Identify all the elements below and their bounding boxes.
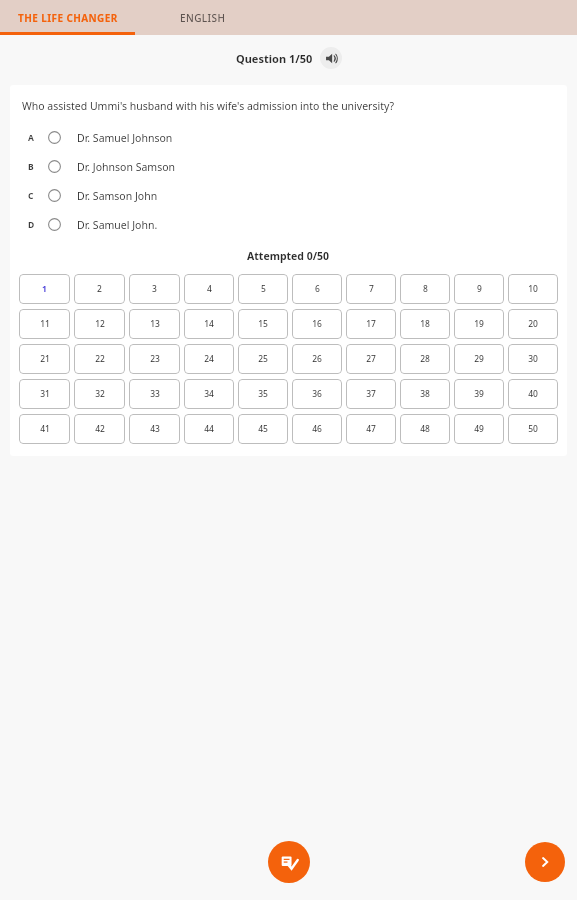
staticText: 6 bbox=[315, 283, 320, 295]
staticText: ENGLISH bbox=[180, 11, 226, 25]
button[interactable]: 40 bbox=[508, 379, 558, 409]
button[interactable]: 15 bbox=[238, 309, 288, 339]
button[interactable]: 31 bbox=[19, 379, 70, 409]
staticText: 16 bbox=[312, 318, 322, 330]
button[interactable]: 22 bbox=[74, 344, 125, 374]
button[interactable]: 18 bbox=[400, 309, 450, 339]
button[interactable]: A bbox=[10, 123, 567, 152]
staticText: 42 bbox=[95, 423, 105, 435]
staticText: 3 bbox=[152, 283, 157, 295]
button[interactable]: 43 bbox=[129, 414, 180, 444]
button[interactable]: 21 bbox=[19, 344, 70, 374]
staticText: 23 bbox=[150, 353, 160, 365]
button[interactable]: 8 bbox=[400, 274, 450, 304]
staticText: 43 bbox=[150, 423, 160, 435]
staticText: 28 bbox=[420, 353, 430, 365]
staticText: 26 bbox=[312, 353, 322, 365]
staticText: 19 bbox=[474, 318, 484, 330]
staticText: Who assisted Ummi's husband with his wif… bbox=[22, 99, 395, 113]
button[interactable]: 12 bbox=[74, 309, 125, 339]
button[interactable]: 49 bbox=[454, 414, 504, 444]
staticText: 14 bbox=[204, 318, 214, 330]
button[interactable]: 42 bbox=[74, 414, 125, 444]
button[interactable]: ENGLISH bbox=[135, 0, 270, 35]
button[interactable]: C bbox=[10, 181, 567, 210]
button[interactable]: 27 bbox=[346, 344, 396, 374]
staticText: 50 bbox=[528, 423, 538, 435]
staticText: 9 bbox=[477, 283, 482, 295]
button[interactable]: 48 bbox=[400, 414, 450, 444]
staticText: 20 bbox=[528, 318, 538, 330]
button[interactable]: 24 bbox=[184, 344, 234, 374]
button[interactable]: 38 bbox=[400, 379, 450, 409]
staticText: 30 bbox=[528, 353, 538, 365]
button[interactable]: 4 bbox=[184, 274, 234, 304]
staticText: THE LIFE CHANGER bbox=[18, 11, 118, 25]
staticText: 13 bbox=[150, 318, 160, 330]
button[interactable]: 26 bbox=[292, 344, 342, 374]
button[interactable]: 35 bbox=[238, 379, 288, 409]
staticText: 29 bbox=[474, 353, 484, 365]
button[interactable]: 30 bbox=[508, 344, 558, 374]
button[interactable]: 6 bbox=[292, 274, 342, 304]
button[interactable]: 37 bbox=[346, 379, 396, 409]
button[interactable]: 5 bbox=[238, 274, 288, 304]
button[interactable]: 17 bbox=[346, 309, 396, 339]
button[interactable]: 50 bbox=[508, 414, 558, 444]
staticText: 32 bbox=[95, 388, 105, 400]
button[interactable]: Play question audio bbox=[320, 47, 342, 69]
button[interactable]: D bbox=[10, 210, 567, 239]
button[interactable]: 36 bbox=[292, 379, 342, 409]
button[interactable]: 34 bbox=[184, 379, 234, 409]
button[interactable]: 47 bbox=[346, 414, 396, 444]
button[interactable]: 28 bbox=[400, 344, 450, 374]
button[interactable]: 32 bbox=[74, 379, 125, 409]
staticText: Question 1/50 bbox=[236, 51, 313, 66]
button[interactable]: 29 bbox=[454, 344, 504, 374]
button[interactable]: 25 bbox=[238, 344, 288, 374]
staticText: D bbox=[28, 219, 35, 231]
button[interactable]: 16 bbox=[292, 309, 342, 339]
button[interactable]: 23 bbox=[129, 344, 180, 374]
staticText: 1 bbox=[42, 283, 47, 295]
staticText: 37 bbox=[366, 388, 376, 400]
button[interactable]: 44 bbox=[184, 414, 234, 444]
button[interactable]: Review answers bbox=[268, 841, 310, 883]
button[interactable]: 1 bbox=[19, 274, 70, 304]
button[interactable]: THE LIFE CHANGER bbox=[0, 0, 135, 35]
button[interactable]: 7 bbox=[346, 274, 396, 304]
staticText: 12 bbox=[95, 318, 105, 330]
button[interactable]: 3 bbox=[129, 274, 180, 304]
staticText: 21 bbox=[40, 353, 50, 365]
button[interactable]: 10 bbox=[508, 274, 558, 304]
staticText: 31 bbox=[40, 388, 50, 400]
staticText: B bbox=[28, 161, 34, 173]
button[interactable]: 19 bbox=[454, 309, 504, 339]
button[interactable]: 45 bbox=[238, 414, 288, 444]
staticText: 15 bbox=[258, 318, 268, 330]
staticText: Dr. Samson John bbox=[77, 189, 158, 203]
button[interactable]: 9 bbox=[454, 274, 504, 304]
staticText: 7 bbox=[369, 283, 374, 295]
staticText: 22 bbox=[95, 353, 105, 365]
button[interactable]: 2 bbox=[74, 274, 125, 304]
button[interactable]: 11 bbox=[19, 309, 70, 339]
button[interactable]: 39 bbox=[454, 379, 504, 409]
button[interactable]: 33 bbox=[129, 379, 180, 409]
staticText: 44 bbox=[204, 423, 214, 435]
staticText: 48 bbox=[420, 423, 430, 435]
button[interactable]: 20 bbox=[508, 309, 558, 339]
staticText: 35 bbox=[258, 388, 268, 400]
staticText: 4 bbox=[207, 283, 212, 295]
staticText: 11 bbox=[40, 318, 50, 330]
button[interactable]: 46 bbox=[292, 414, 342, 444]
button[interactable]: Next question bbox=[525, 842, 565, 882]
staticText: 34 bbox=[204, 388, 214, 400]
button[interactable]: 41 bbox=[19, 414, 70, 444]
staticText: Dr. Johnson Samson bbox=[77, 160, 176, 174]
staticText: 49 bbox=[474, 423, 484, 435]
staticText: Attempted 0/50 bbox=[247, 249, 330, 263]
button[interactable]: 13 bbox=[129, 309, 180, 339]
button[interactable]: B bbox=[10, 152, 567, 181]
button[interactable]: 14 bbox=[184, 309, 234, 339]
